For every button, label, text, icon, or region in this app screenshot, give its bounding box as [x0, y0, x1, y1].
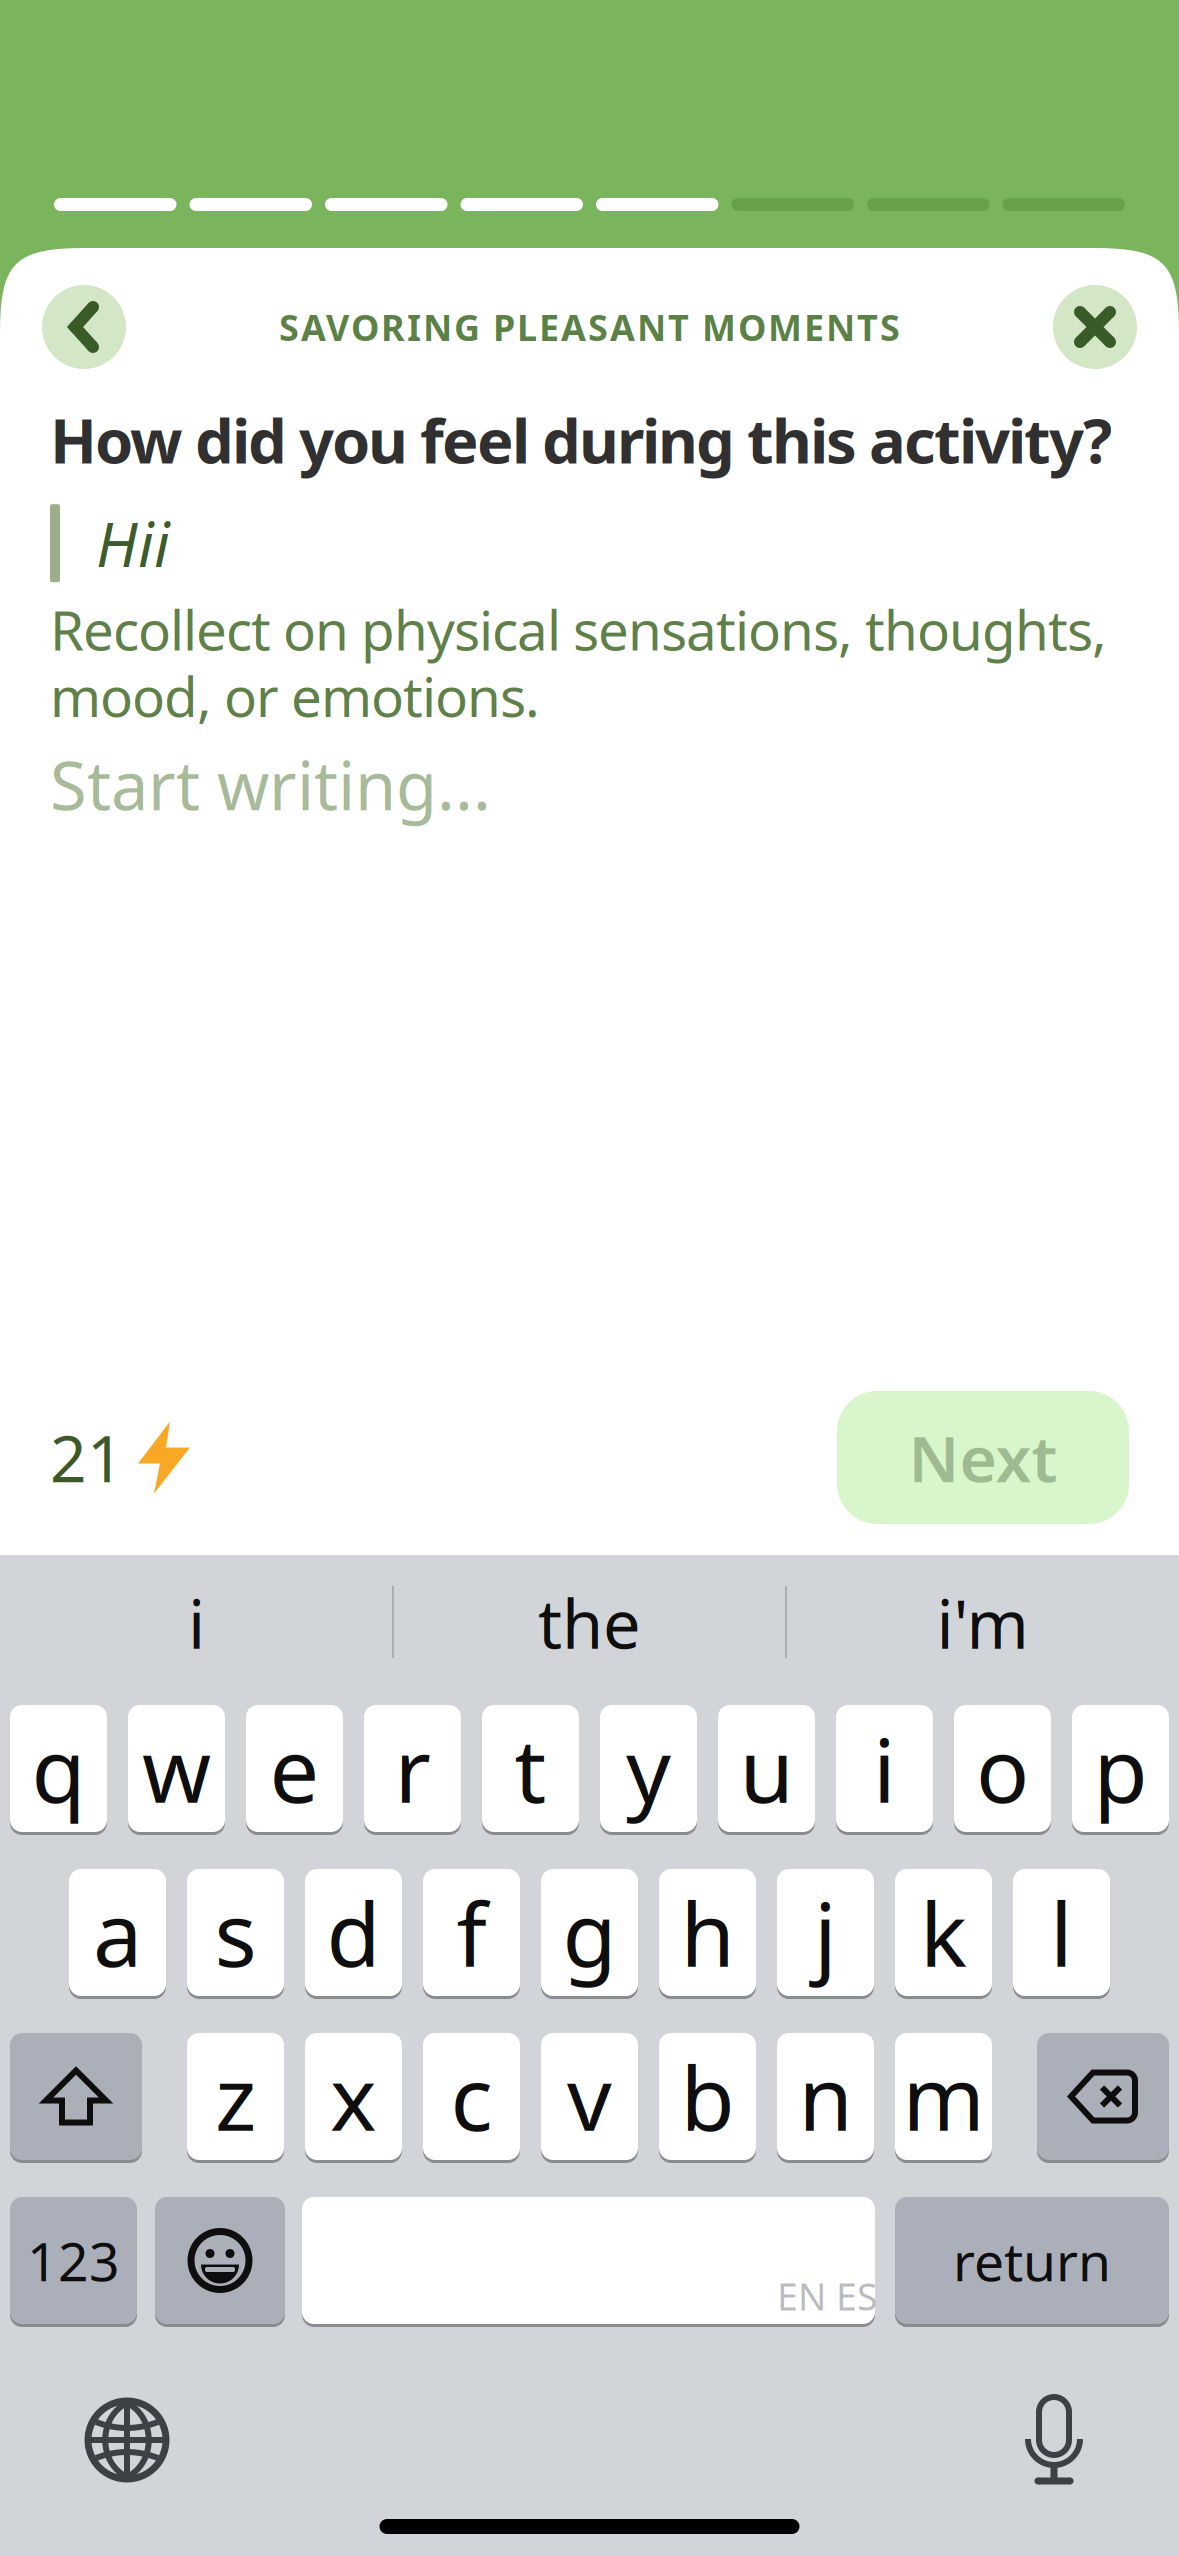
staticText: f	[456, 1874, 486, 1991]
staticText: Next	[908, 1415, 1057, 1500]
button[interactable]: o	[954, 1705, 1051, 1832]
staticText: m	[902, 2038, 984, 2155]
button[interactable]: x	[305, 2033, 402, 2160]
staticText: Hii	[96, 502, 170, 584]
staticText: u	[739, 1710, 793, 1827]
staticText: i	[188, 1579, 205, 1667]
staticText: i	[873, 1710, 896, 1827]
button[interactable]: g	[541, 1869, 638, 1996]
button[interactable]: z	[187, 2033, 284, 2160]
button[interactable]: i'm	[786, 1548, 1179, 1698]
button[interactable]: Dictation	[1014, 2395, 1094, 2485]
button[interactable]: Back	[42, 285, 126, 369]
button[interactable]: n	[777, 2033, 874, 2160]
staticText: i'm	[936, 1579, 1028, 1667]
staticText: c	[450, 2038, 492, 2155]
staticText: How did you feel during this activity?	[50, 399, 1112, 480]
button[interactable]: c	[423, 2033, 520, 2160]
button[interactable]: q	[10, 1705, 107, 1832]
button[interactable]: s	[187, 1869, 284, 1996]
button[interactable]: Numbers	[10, 2197, 137, 2324]
staticText: y	[626, 1710, 671, 1827]
button[interactable]: u	[718, 1705, 815, 1832]
staticText: q	[31, 1710, 85, 1827]
staticText: w	[142, 1710, 211, 1827]
button[interactable]: r	[364, 1705, 461, 1832]
staticText: o	[976, 1710, 1029, 1827]
button[interactable]: a	[69, 1869, 166, 1996]
staticText: j	[814, 1874, 837, 1991]
button[interactable]: j	[777, 1869, 874, 1996]
button[interactable]: y	[600, 1705, 697, 1832]
button[interactable]: f	[423, 1869, 520, 1996]
button[interactable]: the	[393, 1548, 786, 1698]
staticText: SAVORING PLEASANT MOMENTS	[279, 303, 900, 351]
button[interactable]: e	[246, 1705, 343, 1832]
button[interactable]: b	[659, 2033, 756, 2160]
staticText: 123	[27, 2225, 120, 2296]
staticText: s	[214, 1874, 256, 1991]
staticText: a	[93, 1874, 142, 1991]
button[interactable]: p	[1072, 1705, 1169, 1832]
staticText: Start writing...	[50, 740, 491, 829]
staticText: r	[394, 1710, 430, 1827]
button[interactable]: Delete	[1037, 2033, 1169, 2160]
button[interactable]: i	[836, 1705, 933, 1832]
button[interactable]: m	[895, 2033, 992, 2160]
staticText: d	[326, 1874, 380, 1991]
button[interactable]: h	[659, 1869, 756, 1996]
button[interactable]: Close	[1053, 285, 1137, 369]
button[interactable]: d	[305, 1869, 402, 1996]
staticText: Recollect on physical sensations, though…	[50, 593, 1107, 732]
button[interactable]: Next	[837, 1391, 1129, 1524]
button[interactable]: l	[1013, 1869, 1110, 1996]
staticText: 21	[50, 1415, 124, 1500]
button[interactable]: return	[895, 2197, 1169, 2324]
button[interactable]: v	[541, 2033, 638, 2160]
staticText: t	[514, 1710, 546, 1827]
button[interactable]: t	[482, 1705, 579, 1832]
button[interactable]: w	[128, 1705, 225, 1832]
button[interactable]: Space	[302, 2197, 875, 2324]
button[interactable]: k	[895, 1869, 992, 1996]
staticText: b	[680, 2038, 734, 2155]
staticText: z	[215, 2038, 256, 2155]
button[interactable]: Next keyboard	[85, 2398, 169, 2482]
staticText: e	[269, 1710, 319, 1827]
button[interactable]: Emoji	[155, 2197, 285, 2324]
staticText: the	[538, 1579, 641, 1667]
staticText: EN ES	[777, 2271, 877, 2321]
button[interactable]: Shift	[10, 2033, 142, 2160]
staticText: return	[953, 2225, 1111, 2296]
staticText: k	[920, 1874, 967, 1991]
staticText: x	[330, 2038, 377, 2155]
staticText: v	[567, 2038, 612, 2155]
staticText: n	[798, 2038, 852, 2155]
staticText: p	[1093, 1710, 1147, 1827]
button[interactable]: i	[0, 1548, 393, 1698]
staticText: l	[1050, 1874, 1073, 1991]
staticText: g	[562, 1874, 616, 1991]
staticText: h	[680, 1874, 734, 1991]
